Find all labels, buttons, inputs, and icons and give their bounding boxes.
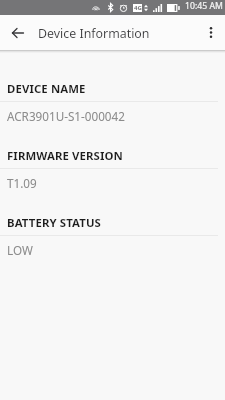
button[interactable]: DEVICE NAME	[0, 77, 225, 144]
staticText: ACR3901U-S1-000042	[7, 108, 125, 124]
staticText: BATTERY STATUS	[7, 215, 101, 231]
staticText: FIRMWARE VERSION	[7, 148, 123, 164]
staticText: 4G	[134, 4, 142, 12]
staticText: T1.09	[7, 175, 37, 191]
staticText: LOW	[7, 242, 33, 258]
button[interactable]: FIRMWARE VERSION	[0, 144, 225, 211]
staticText: DEVICE NAME	[7, 81, 86, 97]
button[interactable]: Back	[0, 15, 35, 50]
staticText: Device Information	[38, 25, 150, 42]
staticText: 10:45 AM	[185, 0, 223, 12]
button[interactable]: More options	[197, 15, 225, 50]
button[interactable]: BATTERY STATUS	[0, 211, 225, 278]
